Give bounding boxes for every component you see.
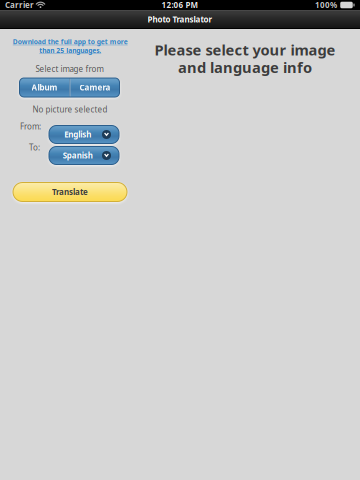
staticText: From:: [20, 121, 41, 132]
staticText: Download the full app to get more than 2…: [12, 37, 127, 55]
staticText: English: [64, 129, 91, 140]
staticText: 12:06 PM: [161, 0, 198, 10]
button[interactable]: Spanish: [49, 146, 119, 164]
button[interactable]: Download the full app to get more than 2…: [9, 37, 131, 55]
staticText: Select image from: [35, 64, 103, 74]
staticText: To:: [29, 142, 40, 153]
staticText: and language info: [178, 57, 312, 77]
staticText: 100%: [315, 0, 337, 10]
staticText: Photo Translator: [147, 14, 212, 25]
button[interactable]: English: [49, 125, 119, 143]
staticText: Album: [31, 82, 57, 93]
staticText: Translate: [52, 187, 88, 197]
button[interactable]: Translate: [13, 182, 127, 201]
staticText: Please select your image: [154, 40, 335, 59]
button[interactable]: Album: [19, 78, 69, 97]
staticText: Spanish: [63, 150, 93, 161]
staticText: No picture selected: [32, 104, 107, 115]
staticText: Carrier: [5, 0, 34, 10]
staticText: Camera: [79, 82, 110, 93]
button[interactable]: Camera: [70, 78, 119, 97]
